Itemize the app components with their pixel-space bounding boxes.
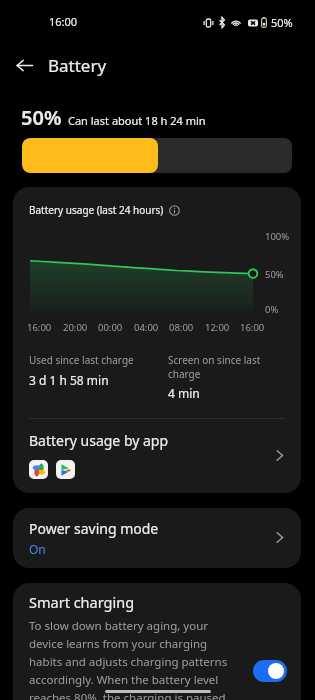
staticText: 50% — [271, 15, 293, 30]
staticText: 50% — [265, 268, 284, 281]
staticText: 16:00 — [27, 321, 52, 334]
staticText: Screen on since last charge — [168, 353, 283, 381]
staticText: Battery usage by app — [29, 431, 169, 450]
button[interactable]: Power saving mode — [13, 508, 301, 568]
button[interactable]: Battery usage by app — [13, 419, 301, 493]
staticText: Power saving mode — [29, 519, 159, 538]
staticText: 20:00 — [63, 321, 88, 334]
staticText: 00:00 — [98, 321, 123, 334]
staticText: To slow down battery aging, your device … — [29, 618, 241, 700]
staticText: 16:00 — [240, 321, 265, 334]
staticText: 08:00 — [169, 321, 194, 334]
staticText: On — [29, 541, 46, 557]
staticText: Can last about 18 h 24 min — [68, 113, 206, 128]
staticText: 12:00 — [205, 321, 230, 334]
staticText: Battery — [48, 54, 107, 77]
button[interactable]: Back — [9, 50, 39, 80]
staticText: 0% — [265, 303, 279, 316]
staticText: 100% — [265, 230, 290, 243]
staticText: 4 min — [168, 385, 200, 401]
staticText: 50% — [21, 104, 62, 131]
staticText: 04:00 — [134, 321, 159, 334]
staticText: Used since last charge — [29, 353, 134, 367]
staticText: Smart charging — [29, 592, 135, 612]
staticText: Battery usage (last 24 hours) — [29, 203, 164, 217]
button[interactable]: Smart charging toggle — [253, 660, 287, 682]
staticText: 3 d 1 h 58 min — [29, 372, 109, 388]
staticText: 16:00 — [49, 14, 78, 29]
